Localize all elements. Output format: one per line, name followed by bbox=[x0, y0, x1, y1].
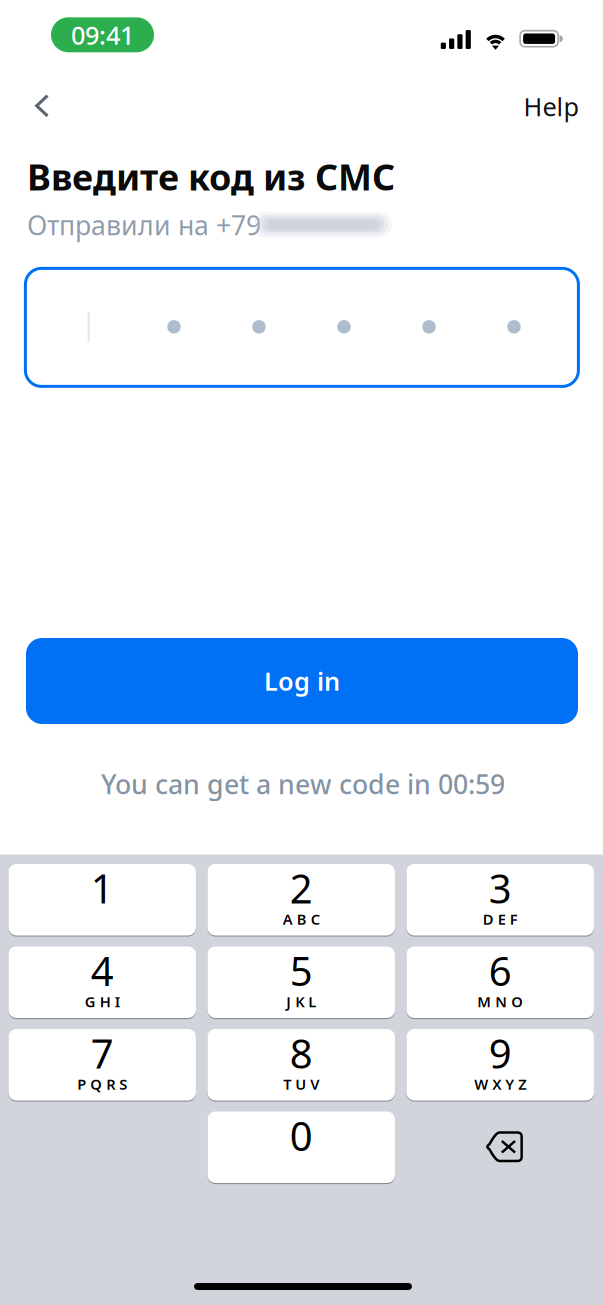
staticText: J K L bbox=[286, 992, 316, 1011]
staticText: Log in bbox=[264, 664, 340, 698]
staticText: P Q R S bbox=[77, 1074, 127, 1094]
button[interactable]: 5 bbox=[207, 946, 395, 1018]
staticText: A B C bbox=[283, 909, 320, 929]
button[interactable]: 4 bbox=[8, 946, 196, 1018]
button[interactable]: 3 bbox=[406, 864, 594, 935]
button[interactable]: 6 bbox=[406, 946, 594, 1018]
staticText: 4 bbox=[91, 944, 114, 997]
staticText: M N O bbox=[477, 992, 523, 1011]
staticText: You can get a new code in 00:59 bbox=[101, 766, 505, 802]
staticText: W X Y Z bbox=[474, 1074, 526, 1094]
staticText: 5 bbox=[290, 944, 313, 997]
button[interactable]: Log in bbox=[26, 638, 578, 724]
staticText: Отправили на +79 bbox=[27, 207, 261, 243]
button[interactable]: 8 bbox=[207, 1029, 395, 1100]
staticText: 09:41 bbox=[71, 18, 134, 52]
staticText: 7 bbox=[91, 1026, 114, 1079]
button[interactable]: Back bbox=[14, 81, 70, 131]
button[interactable]: 7 bbox=[8, 1029, 196, 1100]
staticText: Введите код из СМС bbox=[27, 153, 395, 200]
button[interactable]: Delete bbox=[410, 1111, 598, 1182]
button[interactable]: 1 bbox=[8, 864, 196, 935]
staticText: 0 bbox=[290, 1109, 313, 1162]
staticText: G H I bbox=[85, 992, 120, 1011]
button[interactable]: 9 bbox=[406, 1029, 594, 1100]
button[interactable]: 2 bbox=[207, 864, 395, 935]
staticText: 1 bbox=[91, 861, 114, 914]
button[interactable]: Help bbox=[506, 81, 596, 131]
staticText: 2 bbox=[290, 861, 313, 914]
staticText: 8 bbox=[290, 1026, 313, 1079]
staticText: 6 bbox=[489, 944, 512, 997]
staticText: D E F bbox=[483, 909, 518, 929]
staticText: 3 bbox=[489, 861, 512, 914]
button[interactable]: You can get a new code in 00:59 bbox=[53, 764, 553, 804]
staticText: T U V bbox=[283, 1074, 319, 1094]
staticText: Help bbox=[523, 90, 579, 123]
staticText: 9 bbox=[489, 1026, 512, 1079]
button[interactable]: 0 bbox=[207, 1111, 395, 1183]
